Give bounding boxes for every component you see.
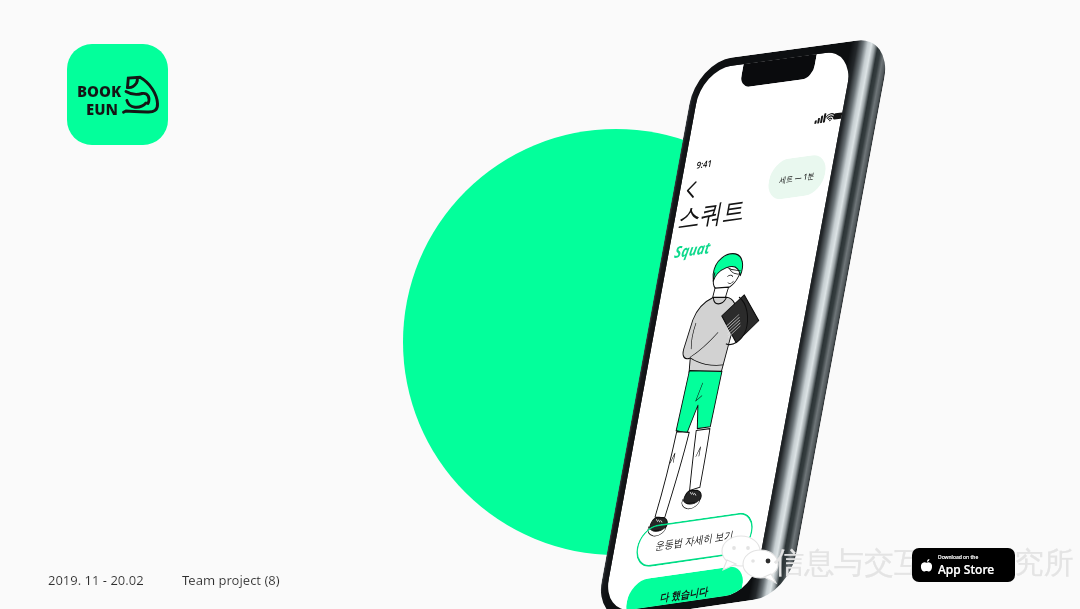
staticText: 스쿼트 xyxy=(675,193,748,236)
staticText: 信息与交互设计研究所 xyxy=(774,544,1074,582)
staticText: 다 했습니다 xyxy=(659,583,710,605)
staticText: BOOK xyxy=(77,81,122,101)
button[interactable]: Back xyxy=(677,175,705,205)
button[interactable]: Download on the App Store xyxy=(912,548,1015,582)
staticText: 세트 — 1분 xyxy=(778,169,815,185)
button[interactable]: 운동법 자세히 보기 xyxy=(633,510,756,569)
staticText: EUN xyxy=(86,99,119,119)
staticText: 2019. 11 - 20.02 xyxy=(48,571,144,589)
button[interactable]: BOOK EUN app icon xyxy=(67,44,168,145)
staticText: Squat xyxy=(673,236,713,263)
button[interactable]: 다 했습니다 xyxy=(625,564,746,609)
staticText: 운동법 자세히 보기 xyxy=(654,527,735,553)
staticText: Team project (8) xyxy=(182,571,280,589)
button[interactable]: 세트 — 1분 xyxy=(765,153,829,201)
staticText: App Store xyxy=(938,561,995,577)
staticText: 9:41 xyxy=(696,156,713,171)
staticText: Download on the xyxy=(938,554,979,561)
